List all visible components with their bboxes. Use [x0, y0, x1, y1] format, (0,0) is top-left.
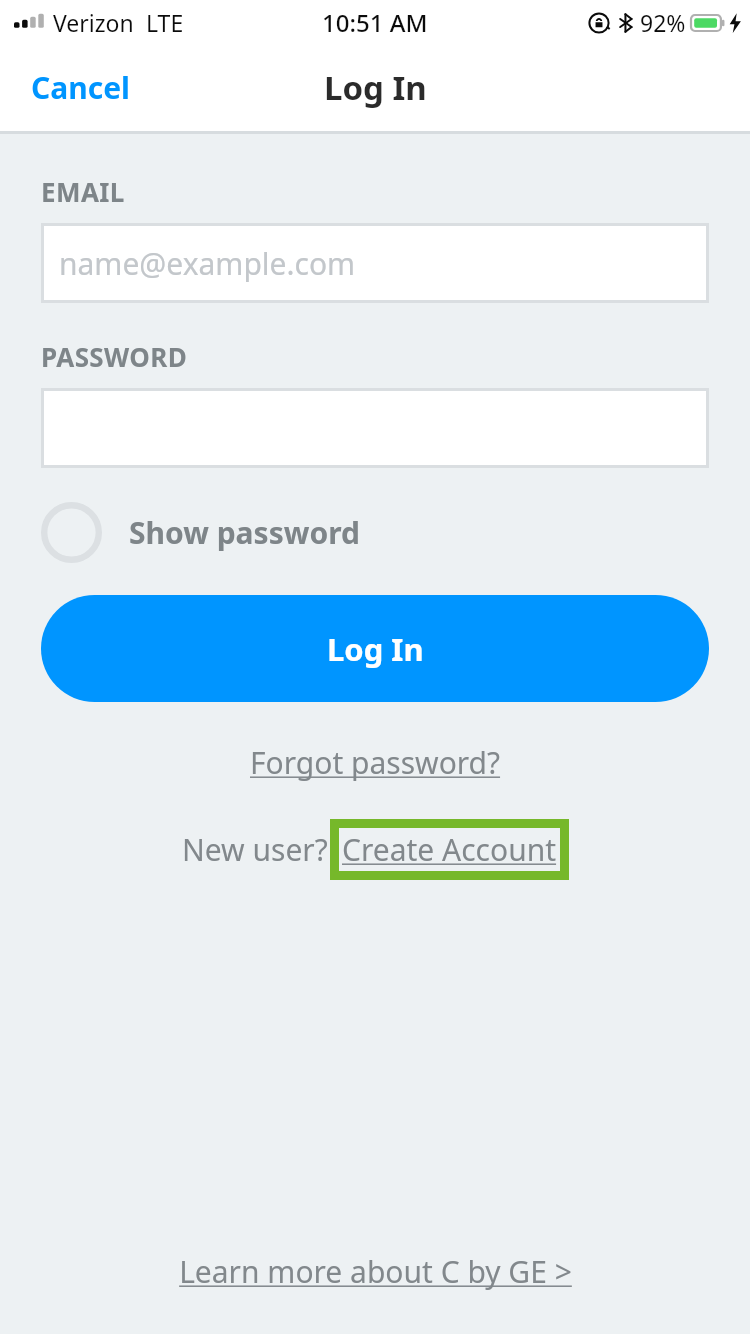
staticText: Show password [129, 512, 360, 553]
staticText: Cancel [31, 67, 131, 108]
staticText: Learn more about C by GE > [179, 1251, 572, 1292]
button[interactable]: name@example.com [41, 223, 709, 303]
button[interactable]: Show password [41, 494, 360, 571]
staticText: 92% [640, 7, 686, 38]
button[interactable]: Cancel [0, 53, 162, 122]
staticText: EMAIL [41, 174, 125, 209]
staticText: LTE [146, 7, 184, 38]
staticText: Verizon [53, 7, 134, 38]
staticText: Create Account [342, 829, 557, 870]
staticText: New user? [182, 829, 328, 870]
button[interactable]: Learn more about C by GE > [167, 1245, 584, 1298]
button[interactable]: Forgot password? [240, 736, 511, 789]
button[interactable]: Create Account [339, 828, 560, 871]
button[interactable]: Log In [41, 595, 709, 702]
staticText: Log In [324, 65, 427, 110]
staticText: 10:51 AM [322, 6, 428, 39]
staticText: PASSWORD [41, 339, 188, 374]
staticText: Forgot password? [250, 742, 501, 783]
staticText: Log In [327, 628, 424, 670]
staticText: name@example.com [59, 243, 356, 284]
button[interactable]: Password input [41, 388, 709, 468]
